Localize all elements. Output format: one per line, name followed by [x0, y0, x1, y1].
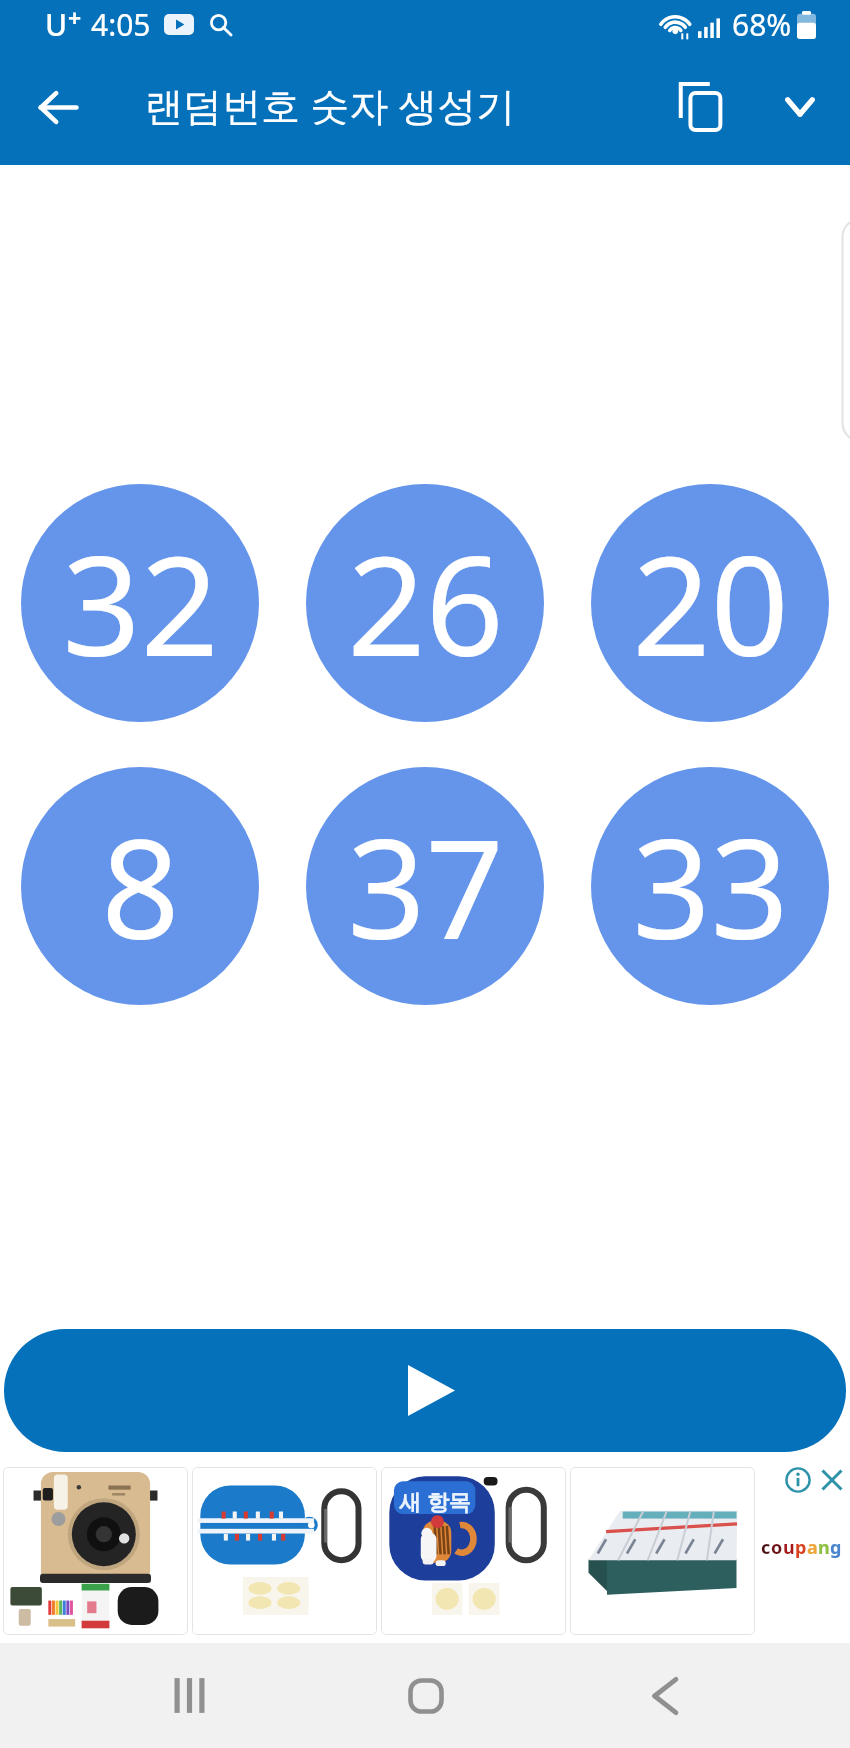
button[interactable]: 32: [21, 484, 259, 722]
staticText: +: [68, 2, 82, 33]
staticText: 랜덤번호 숫자 생성기: [144, 78, 516, 131]
button[interactable]: Copy: [654, 60, 748, 154]
staticText: n: [818, 1535, 830, 1560]
staticText: p: [795, 1535, 807, 1560]
button[interactable]: Ad info: [783, 1465, 813, 1495]
button[interactable]: [3, 1467, 188, 1635]
button[interactable]: Home: [336, 1643, 516, 1748]
staticText: 20: [632, 510, 789, 697]
button[interactable]: 26: [306, 484, 544, 722]
button[interactable]: Expand: [753, 60, 847, 154]
staticText: u: [783, 1535, 795, 1560]
button[interactable]: 새 항목: [381, 1467, 566, 1635]
button[interactable]: [570, 1467, 755, 1635]
staticText: c: [761, 1535, 771, 1560]
button[interactable]: 8: [21, 767, 259, 1005]
button[interactable]: [192, 1467, 377, 1635]
button[interactable]: Recent apps: [99, 1643, 279, 1748]
button[interactable]: 37: [306, 767, 544, 1005]
staticText: 4:05: [91, 4, 151, 45]
staticText: 68%: [732, 4, 792, 45]
button[interactable]: Back: [575, 1643, 755, 1748]
staticText: 32: [62, 510, 219, 697]
button[interactable]: 20: [591, 484, 829, 722]
staticText: 26: [347, 510, 504, 697]
button[interactable]: 33: [591, 767, 829, 1005]
staticText: U: [45, 4, 68, 45]
button[interactable]: Back: [11, 60, 105, 154]
staticText: 37: [347, 793, 504, 980]
button[interactable]: Close ad: [817, 1465, 847, 1495]
button[interactable]: Generate numbers: [4, 1329, 846, 1452]
staticText: 33: [632, 793, 789, 980]
staticText: o: [771, 1535, 783, 1560]
staticText: 새 항목: [399, 1486, 471, 1516]
staticText: 8: [101, 793, 180, 980]
staticText: a: [807, 1535, 818, 1560]
staticText: g: [830, 1535, 842, 1560]
